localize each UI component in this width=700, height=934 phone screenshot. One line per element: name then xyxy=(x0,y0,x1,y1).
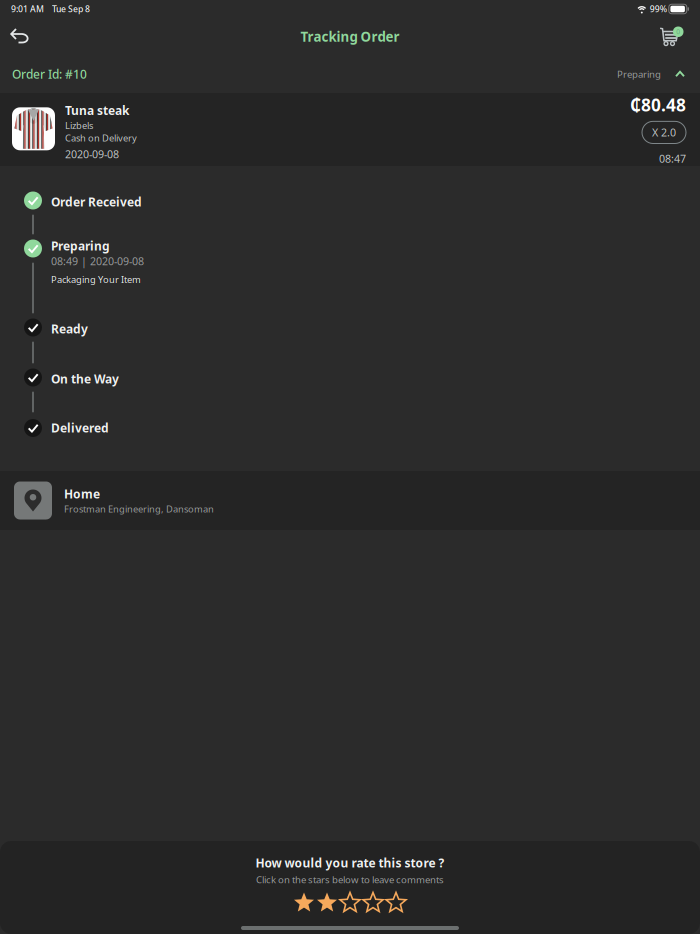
button[interactable]: Cart xyxy=(649,18,700,54)
staticText: Order Received xyxy=(51,194,142,210)
staticText: 2020-09-08 xyxy=(65,147,119,161)
button[interactable]: Rate 4 star xyxy=(361,892,384,913)
staticText: Home xyxy=(64,486,100,502)
button[interactable]: Back xyxy=(0,20,41,52)
staticText: Packaging Your Item xyxy=(51,273,141,285)
button[interactable]: Preparing xyxy=(617,67,685,81)
staticText: Tue Sep 8 xyxy=(52,3,90,15)
staticText: 0 xyxy=(676,27,680,36)
staticText: How would you rate this store ? xyxy=(255,855,444,871)
staticText: ₵80.48 xyxy=(630,93,686,116)
staticText: 08:49 | 2020-09-08 xyxy=(51,254,144,268)
staticText: Tracking Order xyxy=(300,28,399,45)
staticText: On the Way xyxy=(51,371,119,387)
staticText: 08:47 xyxy=(659,151,686,166)
button[interactable]: Rate 1 star xyxy=(292,892,315,913)
button[interactable]: Rate 2 star xyxy=(315,892,338,913)
staticText: Click on the stars below to leave commen… xyxy=(256,873,444,886)
staticText: 9:01 AM xyxy=(11,3,44,15)
staticText: Cash on Delivery xyxy=(65,132,137,144)
staticText: 99% xyxy=(650,3,667,15)
staticText: Preparing xyxy=(51,238,110,254)
staticText: Frostman Engineering, Dansoman xyxy=(64,503,214,515)
staticText: Order Id: #10 xyxy=(12,66,87,82)
staticText: X 2.0 xyxy=(652,125,676,139)
button[interactable]: Rate 5 star xyxy=(384,892,407,913)
staticText: Lizbels xyxy=(65,119,93,132)
button[interactable]: Rate 3 star xyxy=(338,892,361,913)
staticText: Delivered xyxy=(51,420,109,436)
staticText: Tuna steak xyxy=(65,102,129,118)
staticText: Ready xyxy=(51,321,88,337)
staticText: Preparing xyxy=(617,67,661,81)
